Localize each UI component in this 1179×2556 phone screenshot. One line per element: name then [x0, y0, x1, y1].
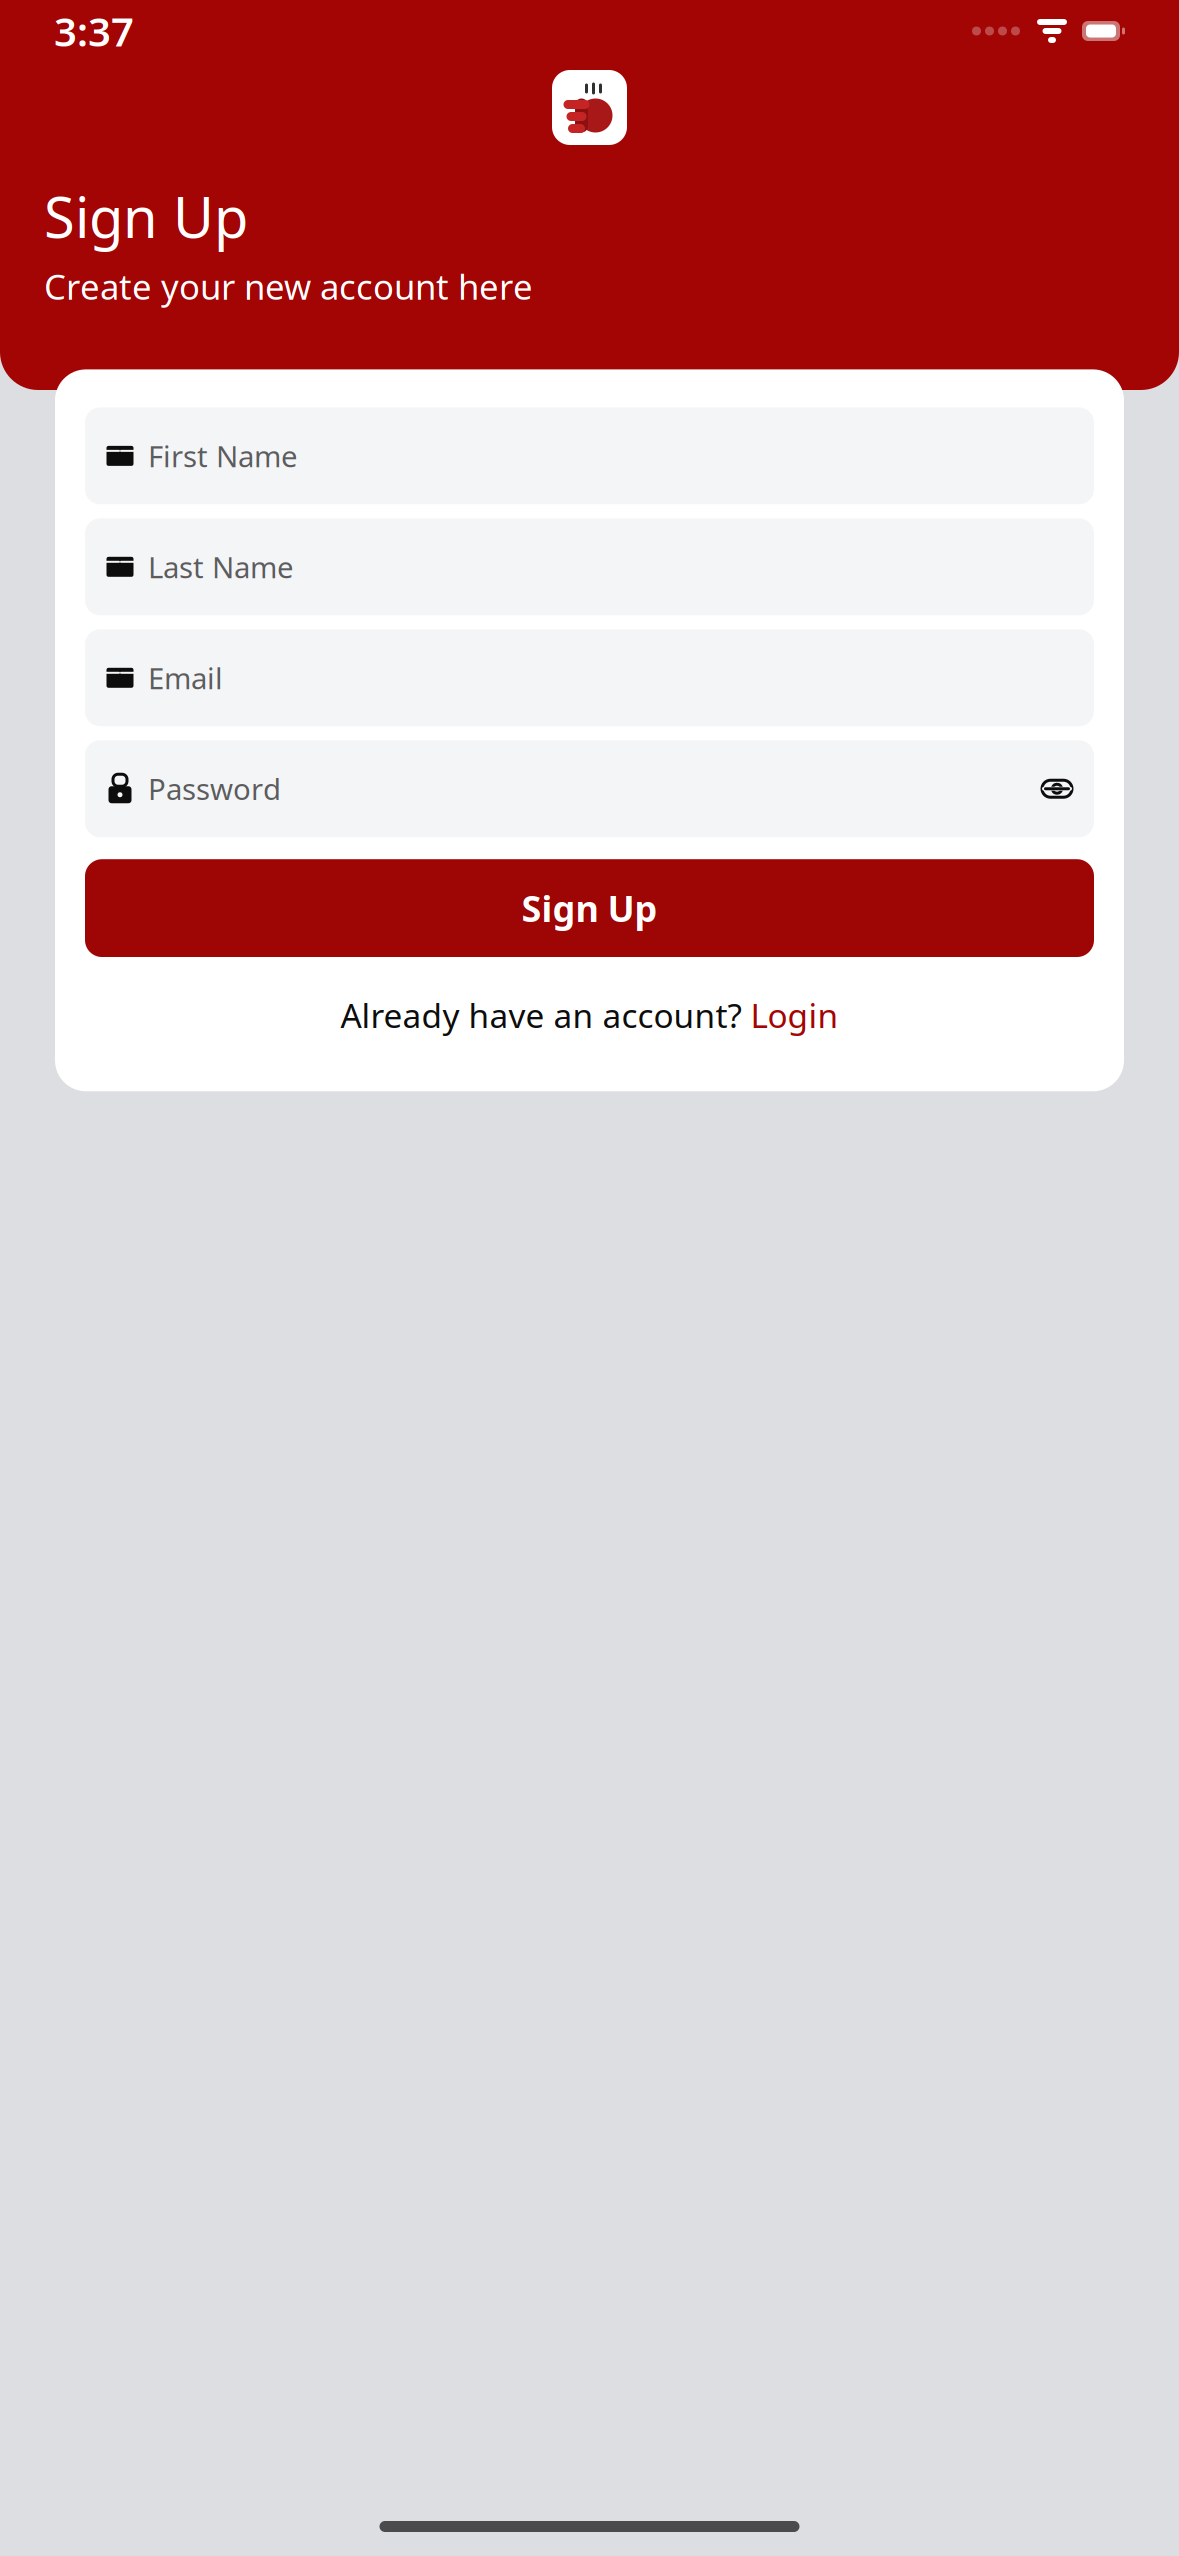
- staticText: Login: [750, 993, 838, 1037]
- staticText: Last Name: [148, 547, 294, 586]
- staticText: Password: [148, 769, 281, 808]
- staticText: Sign Up: [521, 884, 657, 932]
- staticText: Create your new account here: [44, 263, 533, 309]
- button[interactable]: Show password: [1030, 776, 1074, 802]
- staticText: Email: [148, 658, 223, 697]
- button[interactable]: Already have an account?: [85, 977, 1094, 1053]
- staticText: Already have an account?: [340, 993, 750, 1037]
- staticText: 3:37: [54, 4, 134, 57]
- staticText: First Name: [148, 436, 298, 475]
- staticText: Sign Up: [44, 179, 248, 253]
- button[interactable]: Sign Up: [85, 859, 1094, 957]
